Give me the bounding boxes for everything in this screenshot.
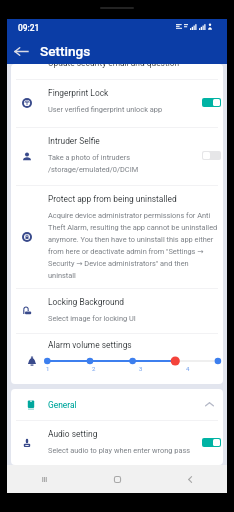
button[interactable]: Recents	[7, 465, 81, 493]
staticText: Audio setting	[48, 429, 98, 439]
staticText: Select audio to play when enter wrong pa…	[48, 446, 191, 455]
staticText: Protect app from being uninstalled	[48, 194, 177, 204]
button[interactable]: Intruder Selfie	[11, 127, 223, 185]
staticText: Settings	[40, 43, 91, 59]
staticText: General	[48, 400, 77, 410]
staticText: 2	[92, 365, 96, 372]
staticText: 4	[186, 365, 190, 372]
staticText: Fingerprint Lock	[48, 88, 109, 98]
staticText: Locking Background	[48, 297, 125, 307]
button[interactable]: Toggle on	[202, 98, 221, 107]
button[interactable]: General	[11, 389, 223, 420]
staticText: User verified fingerprint unlock app	[48, 105, 163, 114]
staticText: Alarm volume settings	[48, 340, 132, 350]
staticText: Take a photo of intruders /storage/emula…	[48, 153, 139, 174]
staticText: 1	[46, 365, 50, 372]
staticText: Select image for locking UI	[48, 314, 136, 323]
button[interactable]: Home	[81, 465, 154, 493]
button[interactable]: Toggle off	[202, 151, 221, 160]
button[interactable]: Fingerprint Lock	[11, 79, 223, 127]
button[interactable]: Alarm volume	[11, 348, 223, 380]
staticText: Intruder Selfie	[48, 136, 100, 146]
staticText: Acquire device administrator permissions…	[48, 211, 218, 280]
button[interactable]: Toggle on	[202, 438, 221, 447]
button[interactable]: Back	[154, 465, 227, 493]
staticText: Update security email and question	[48, 64, 180, 68]
button[interactable]: Protect app from being uninstalled	[11, 185, 223, 288]
button[interactable]: Back	[11, 41, 31, 61]
staticText: 09:21	[18, 23, 40, 33]
button[interactable]: Locking Background	[11, 288, 223, 333]
staticText: 3	[139, 365, 143, 372]
button[interactable]: Audio setting	[11, 420, 223, 465]
